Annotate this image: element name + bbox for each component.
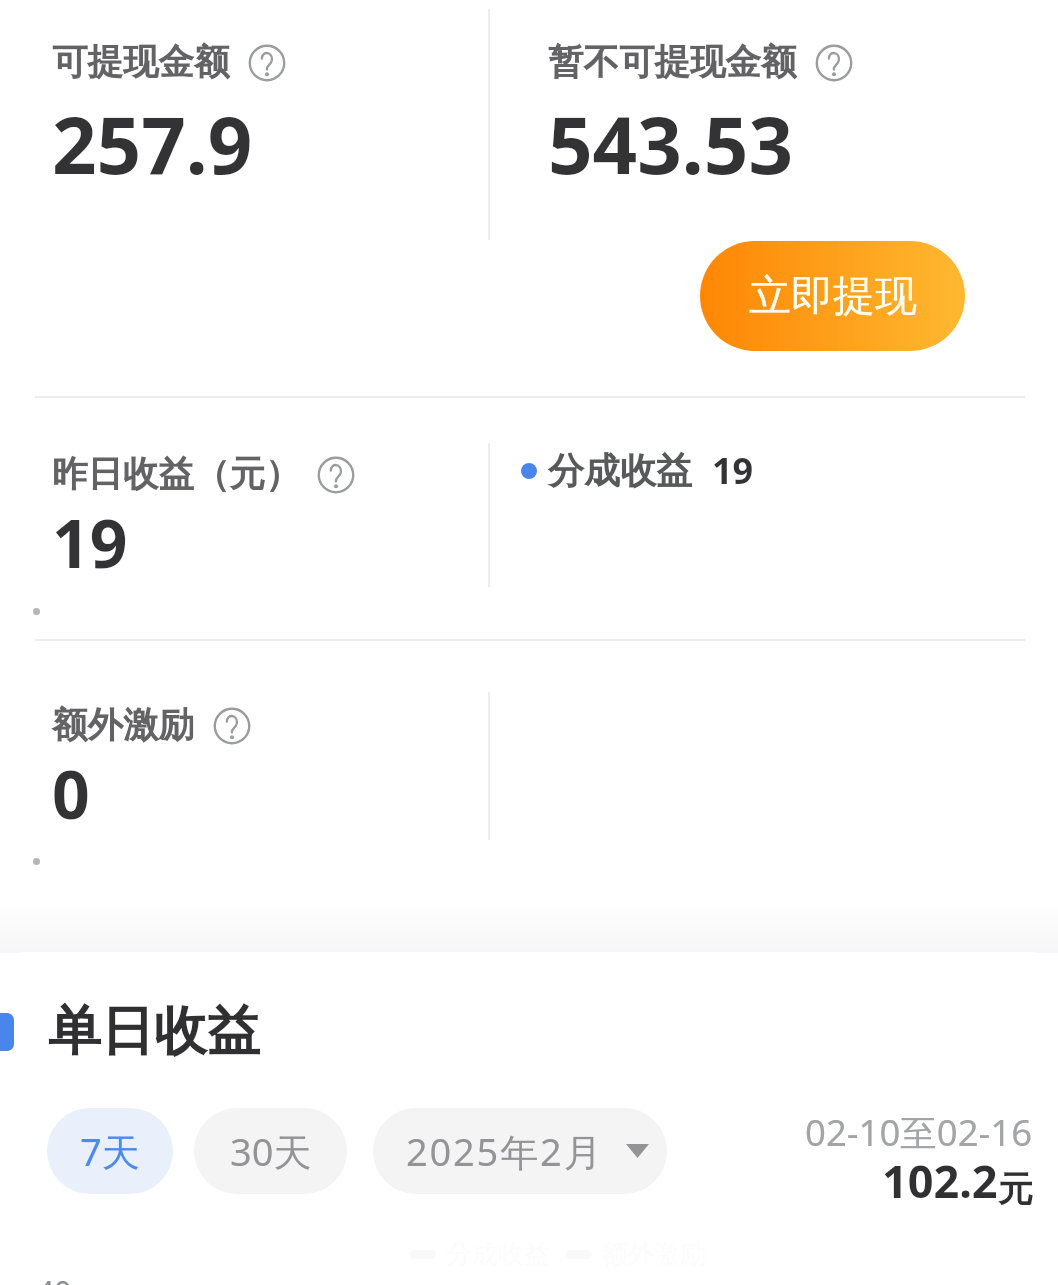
button[interactable]: 立即提现: [700, 241, 965, 351]
staticText: 额外激励: [52, 703, 194, 748]
button[interactable]: 2025年2月: [373, 1108, 667, 1194]
staticText: 单日收益: [48, 998, 260, 1065]
staticText: 102.2: [882, 1150, 998, 1211]
button[interactable]: 30天: [194, 1108, 347, 1194]
button[interactable]: 额外激励说明: [52, 703, 251, 748]
staticText: 分成收益: [548, 448, 692, 493]
staticText: 可提现金额: [52, 40, 230, 85]
staticText: 7天: [80, 1125, 140, 1177]
staticText: 2025年2月: [406, 1125, 604, 1177]
staticText: 543.53: [548, 91, 793, 197]
staticText: 昨日收益（元）: [52, 452, 301, 497]
staticText: 02-10至02-16: [805, 1107, 1033, 1157]
staticText: 立即提现: [749, 270, 917, 323]
staticText: 元: [998, 1167, 1033, 1211]
staticText: 40: [37, 1271, 72, 1285]
staticText: 257.9: [52, 91, 253, 197]
button[interactable]: 7天: [47, 1108, 173, 1194]
staticText: 暂不可提现金额: [548, 40, 797, 85]
staticText: 0: [52, 748, 90, 838]
staticText: 19: [52, 497, 128, 587]
staticText: 19: [712, 446, 754, 495]
button[interactable]: 昨日收益说明: [52, 452, 355, 497]
button[interactable]: 可提现金额说明: [52, 40, 286, 85]
staticText: 30天: [230, 1125, 312, 1177]
button[interactable]: 暂不可提现金额说明: [548, 40, 853, 85]
